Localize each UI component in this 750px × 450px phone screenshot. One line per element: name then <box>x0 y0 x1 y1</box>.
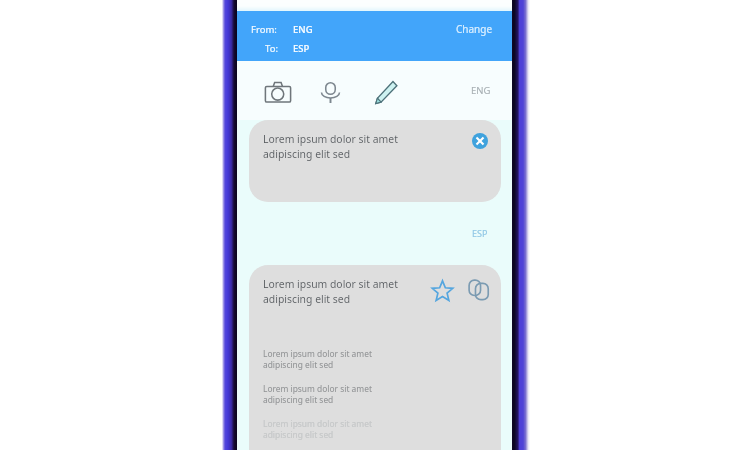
staticText: ESP <box>293 42 310 55</box>
button[interactable]: Camera <box>263 77 293 107</box>
button[interactable]: Lorem ipsum dolor sit amet <box>249 265 501 450</box>
button[interactable]: Clear text <box>472 133 488 149</box>
button[interactable]: ENG <box>471 84 491 97</box>
button[interactable]: Lorem ipsum dolor sit amet <box>249 120 501 202</box>
staticText: adipiscing elit sed <box>263 292 351 306</box>
button[interactable]: ESP <box>472 227 488 239</box>
staticText: Lorem ipsum dolor sit amet <box>263 418 372 429</box>
staticText: adipiscing elit sed <box>263 394 334 405</box>
staticText: Lorem ipsum dolor sit amet <box>263 132 398 146</box>
staticText: Change <box>456 22 493 36</box>
staticText: adipiscing elit sed <box>263 429 334 440</box>
staticText: From: <box>251 23 277 36</box>
staticText: ESP <box>472 227 488 239</box>
staticText: To: <box>251 42 278 55</box>
staticText: Lorem ipsum dolor sit amet <box>263 383 372 394</box>
staticText: ENG <box>293 23 313 36</box>
staticText: adipiscing elit sed <box>263 147 351 161</box>
button[interactable]: Voice input <box>315 77 345 107</box>
button[interactable]: Change <box>456 22 493 36</box>
staticText: ENG <box>471 84 491 97</box>
button[interactable]: Handwriting <box>372 77 402 107</box>
button[interactable]: From: <box>237 11 512 61</box>
staticText: Lorem ipsum dolor sit amet <box>263 277 398 291</box>
button[interactable]: Favourite <box>429 277 455 303</box>
button[interactable]: Copy <box>466 277 492 303</box>
staticText: Lorem ipsum dolor sit amet <box>263 348 372 359</box>
staticText: adipiscing elit sed <box>263 359 334 370</box>
